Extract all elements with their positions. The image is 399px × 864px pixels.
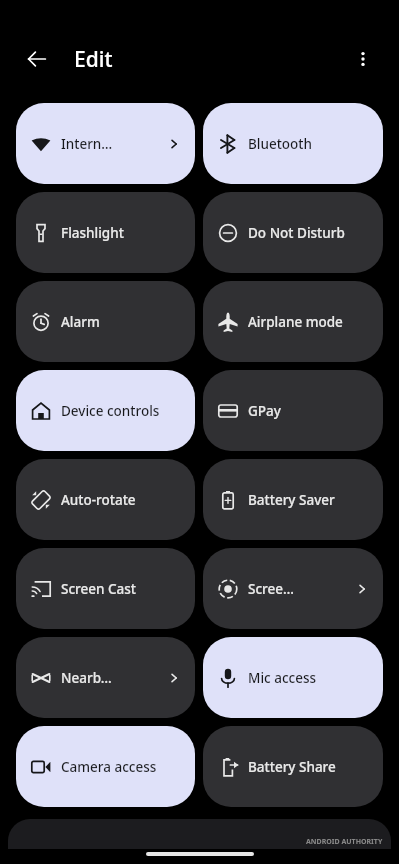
staticText: Flashlight <box>61 224 124 242</box>
button[interactable]: More options <box>345 41 381 77</box>
button[interactable]: Do Not Disturb <box>203 192 383 273</box>
button[interactable]: Screen Cast <box>16 548 195 629</box>
button[interactable]: GPay <box>203 370 383 451</box>
staticText: Alarm <box>61 313 100 331</box>
button[interactable]: Back <box>18 40 56 78</box>
staticText: Screen record <box>248 580 301 598</box>
button[interactable]: Battery Saver <box>203 459 383 540</box>
staticText: GPay <box>248 402 281 420</box>
button[interactable]: Flashlight <box>16 192 195 273</box>
button[interactable]: Battery Share <box>203 726 383 807</box>
staticText: Nearby Share <box>61 669 114 687</box>
staticText: Screen Cast <box>61 580 136 598</box>
staticText: ANDROID AUTHORITY <box>306 837 383 847</box>
staticText: Airplane mode <box>248 313 343 331</box>
button[interactable]: Screen record <box>203 548 383 629</box>
button[interactable]: Alarm <box>16 281 195 362</box>
button[interactable]: Airplane mode <box>203 281 383 362</box>
staticText: Edit <box>74 45 113 74</box>
staticText: Battery Saver <box>248 491 335 509</box>
button[interactable]: Nearby Share <box>16 637 195 718</box>
button[interactable]: Camera access <box>16 726 195 807</box>
staticText: Do Not Disturb <box>248 224 345 242</box>
staticText: Bluetooth <box>248 135 312 153</box>
staticText: Camera access <box>61 758 157 776</box>
button[interactable]: Bluetooth <box>203 103 383 184</box>
staticText: Mic access <box>248 669 317 687</box>
button[interactable]: Auto-rotate <box>16 459 195 540</box>
staticText: Device controls <box>61 402 160 420</box>
staticText: Internet <box>61 135 114 153</box>
button[interactable]: Mic access <box>203 637 383 718</box>
button[interactable]: Internet <box>16 103 195 184</box>
staticText: Battery Share <box>248 758 336 776</box>
button[interactable]: Device controls <box>16 370 195 451</box>
staticText: Auto-rotate <box>61 491 136 509</box>
